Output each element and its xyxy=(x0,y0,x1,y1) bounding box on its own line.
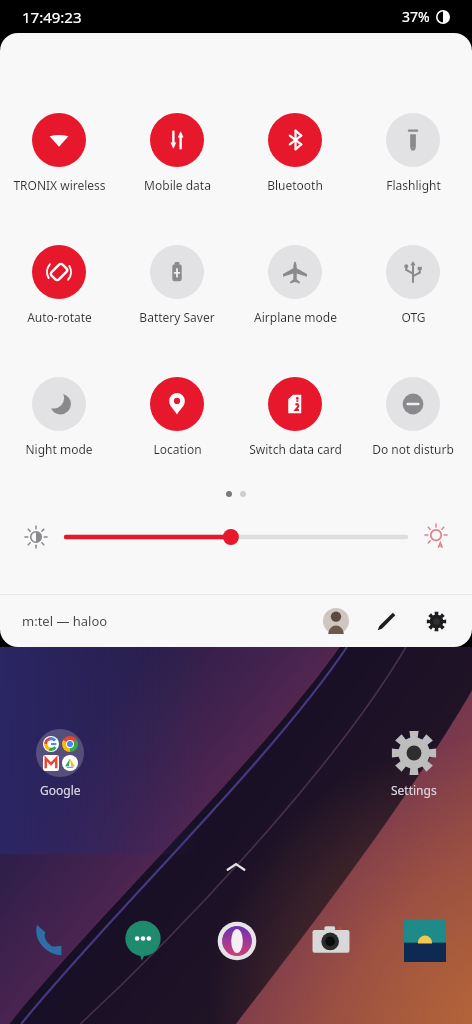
button[interactable]: Brightness slider xyxy=(66,522,406,552)
button[interactable]: Settings xyxy=(380,729,448,798)
button[interactable]: TRONIX wireless xyxy=(0,113,118,193)
button[interactable]: Flashlight xyxy=(354,113,472,193)
button[interactable]: Settings xyxy=(418,603,454,639)
staticText: 37% xyxy=(402,7,430,26)
staticText: Mobile data xyxy=(144,177,211,193)
staticText: TRONIX wireless xyxy=(13,177,106,193)
button[interactable]: Auto-rotate xyxy=(0,245,118,325)
button[interactable]: User profile xyxy=(318,603,354,639)
staticText: Google xyxy=(40,782,81,798)
staticText: m:tel — haloo xyxy=(22,612,108,630)
staticText: Do not disturb xyxy=(372,441,454,457)
button[interactable]: Edit tiles xyxy=(368,603,404,639)
button[interactable]: Gallery xyxy=(378,915,472,967)
button[interactable]: Camera xyxy=(284,915,378,967)
button[interactable]: Switch data card xyxy=(236,377,354,457)
staticText: Auto-rotate xyxy=(27,309,92,325)
button[interactable]: OTG xyxy=(354,245,472,325)
staticText: Night mode xyxy=(25,441,93,457)
staticText: Airplane mode xyxy=(254,309,337,325)
button[interactable]: Phone xyxy=(0,915,95,967)
button[interactable]: Do not disturb xyxy=(354,377,472,457)
button[interactable]: Messages xyxy=(95,915,190,967)
button[interactable]: Night mode xyxy=(0,377,118,457)
button[interactable]: Battery Saver xyxy=(118,245,236,325)
staticText: Flashlight xyxy=(386,177,441,193)
button[interactable]: Mobile data xyxy=(118,113,236,193)
button[interactable]: Airplane mode xyxy=(236,245,354,325)
staticText: Battery Saver xyxy=(139,309,215,325)
staticText: Bluetooth xyxy=(267,177,323,193)
staticText: OTG xyxy=(401,309,426,325)
staticText: Location xyxy=(153,441,202,457)
staticText: Settings xyxy=(391,782,437,798)
button[interactable]: Auto brightness xyxy=(416,517,456,557)
staticText: 17:49:23 xyxy=(22,7,82,27)
button[interactable]: Google xyxy=(26,729,94,798)
button[interactable]: Opera xyxy=(190,915,284,967)
button[interactable]: Location xyxy=(118,377,236,457)
button[interactable]: Brightness xyxy=(16,517,56,557)
button[interactable]: Bluetooth xyxy=(236,113,354,193)
button[interactable]: Open app drawer xyxy=(0,855,472,879)
staticText: Switch data card xyxy=(249,441,342,457)
